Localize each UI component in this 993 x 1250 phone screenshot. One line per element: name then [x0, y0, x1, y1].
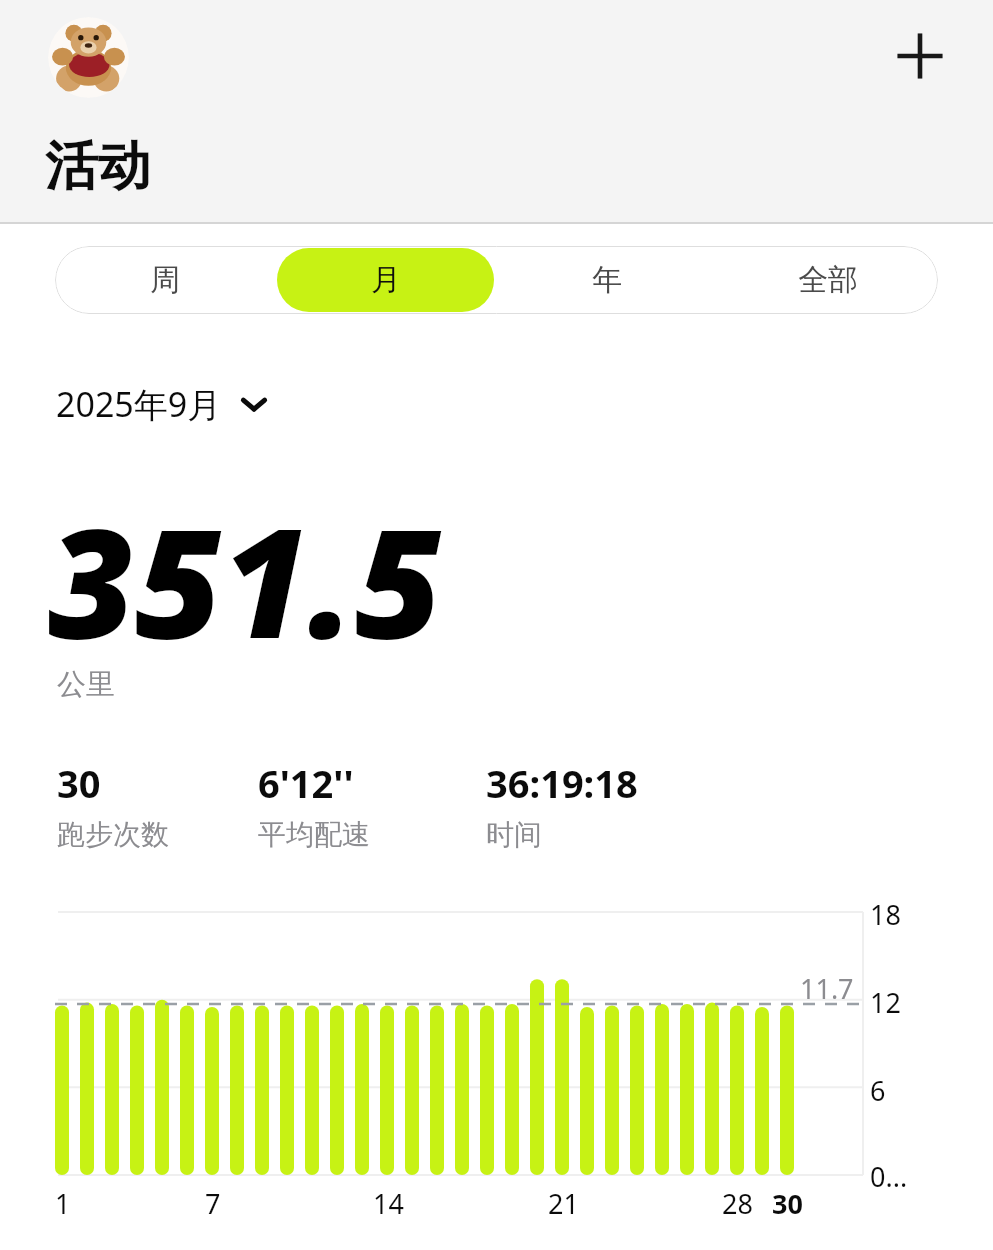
- staticText: 30: [772, 1185, 803, 1222]
- staticText: 平均配速: [258, 817, 370, 852]
- button[interactable]: 全部: [719, 248, 936, 312]
- button[interactable]: Add activity: [884, 20, 956, 92]
- button[interactable]: 6'12'': [258, 757, 370, 852]
- staticText: 年: [592, 261, 622, 299]
- staticText: 0...: [870, 1158, 908, 1195]
- staticText: 12: [870, 984, 901, 1021]
- staticText: 全部: [798, 261, 858, 299]
- staticText: 36:19:18: [486, 757, 638, 809]
- button[interactable]: 36:19:18: [486, 757, 638, 852]
- staticText: 公里: [57, 666, 115, 703]
- button[interactable]: 2025年9月: [52, 378, 272, 430]
- staticText: 1: [55, 1185, 71, 1222]
- button[interactable]: 年: [498, 248, 715, 312]
- button[interactable]: 30: [57, 757, 169, 852]
- staticText: 跑步次数: [57, 817, 169, 852]
- staticText: 6'12'': [258, 757, 354, 809]
- staticText: 时间: [486, 817, 542, 852]
- staticText: 28: [722, 1185, 753, 1222]
- staticText: 351.5: [48, 478, 442, 682]
- button[interactable]: 周: [57, 248, 273, 312]
- staticText: 18: [870, 896, 901, 933]
- staticText: 周: [150, 261, 180, 299]
- staticText: 6: [870, 1072, 886, 1109]
- staticText: 21: [548, 1185, 579, 1222]
- button[interactable]: 月: [277, 248, 494, 312]
- staticText: 11.7: [800, 970, 854, 1007]
- staticText: 月: [371, 261, 401, 299]
- staticText: 14: [373, 1185, 404, 1222]
- staticText: 30: [57, 757, 101, 809]
- staticText: 2025年9月: [56, 381, 222, 427]
- staticText: 7: [205, 1185, 221, 1222]
- staticText: 活动: [45, 133, 151, 200]
- button[interactable]: Profile: [48, 17, 129, 98]
